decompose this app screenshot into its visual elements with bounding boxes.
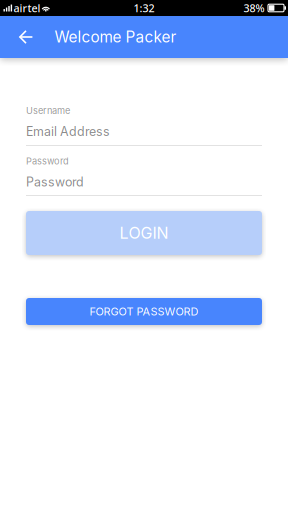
button[interactable]: Back — [10, 16, 42, 58]
staticText: 38% — [243, 1, 264, 15]
staticText: Email Address — [26, 124, 110, 139]
staticText: Welcome Packer — [54, 28, 176, 46]
staticText: LOGIN — [119, 223, 168, 243]
staticText: Username — [26, 105, 70, 116]
button[interactable]: LOGIN — [26, 211, 262, 255]
button[interactable]: FORGOT PASSWORD — [26, 298, 262, 325]
staticText: Password — [26, 155, 69, 167]
staticText: FORGOT PASSWORD — [89, 305, 198, 318]
staticText: 1:32 — [133, 1, 154, 15]
staticText: airtel — [14, 1, 41, 15]
staticText: Password — [26, 174, 84, 189]
